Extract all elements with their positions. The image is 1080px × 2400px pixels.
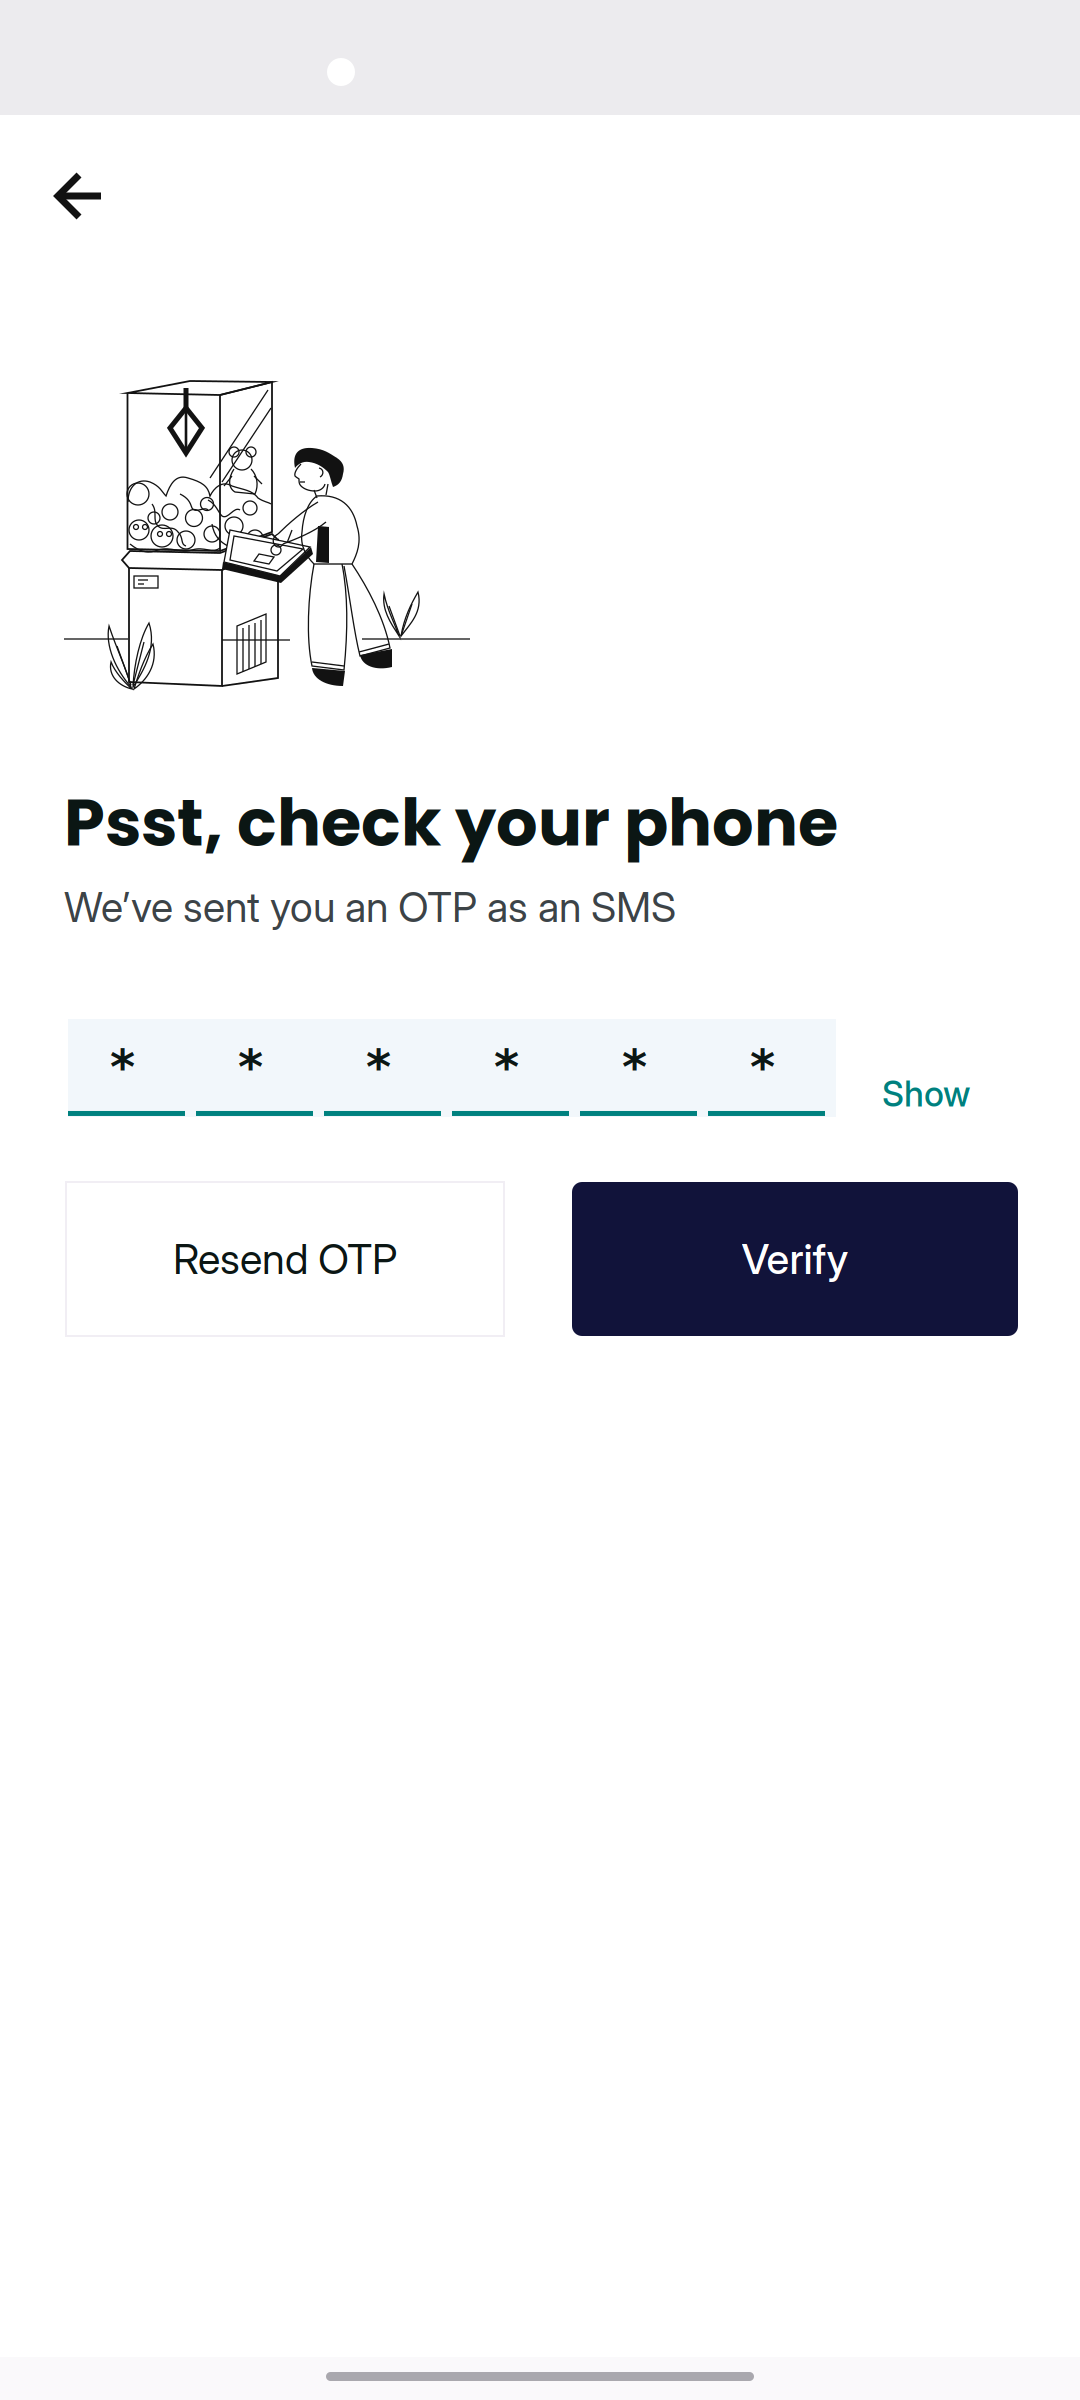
staticText: Resend OTP — [173, 1234, 397, 1284]
staticText: Show — [882, 1073, 970, 1115]
staticText: * — [366, 1039, 391, 1095]
staticText: Verify — [741, 1234, 848, 1284]
staticText: * — [750, 1039, 775, 1095]
button[interactable]: Show — [836, 1011, 1010, 1125]
staticText: * — [494, 1039, 519, 1095]
staticText: Psst, check your phone — [64, 777, 838, 868]
button[interactable]: Back — [0, 143, 140, 249]
staticText: * — [622, 1039, 647, 1095]
staticText: * — [110, 1039, 135, 1095]
staticText: We’ve sent you an OTP as an SMS — [64, 882, 676, 932]
button[interactable]: Resend OTP — [66, 1182, 504, 1336]
staticText: * — [238, 1039, 263, 1095]
button[interactable]: Verify — [572, 1182, 1018, 1336]
